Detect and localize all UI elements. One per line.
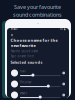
staticText: 9:41 [11, 27, 18, 31]
staticText: Rain [20, 69, 26, 73]
button[interactable]: Remove Waves [62, 94, 65, 96]
staticText: ‹ [11, 31, 13, 38]
staticText: Favorite sound name [10, 49, 38, 53]
staticText: Type a name here [10, 54, 34, 58]
button[interactable]: Remove Fireplace [62, 83, 65, 85]
button[interactable]: Remove Rain [62, 72, 65, 74]
staticText: ıll ◗ [60, 27, 65, 31]
staticText: Choose a name for the new favorite [10, 37, 57, 48]
staticText: Save your favourite [14, 3, 61, 11]
staticText: Fireplace [20, 80, 32, 84]
button[interactable]: Waves [11, 91, 18, 98]
staticText: Selected sounds [10, 59, 42, 65]
staticText: sound combinations [13, 11, 62, 18]
button[interactable]: Rain [11, 69, 18, 76]
button[interactable]: Fireplace [11, 80, 18, 87]
staticText: Waves [20, 91, 27, 95]
button[interactable]: Back [9, 32, 14, 37]
